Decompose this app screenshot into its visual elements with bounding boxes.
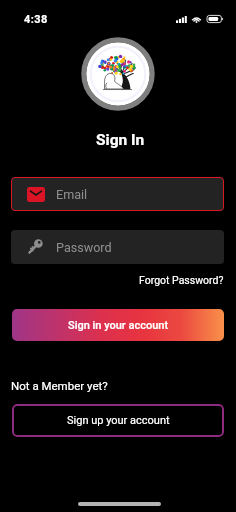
button[interactable]: Sign in your account xyxy=(12,309,224,341)
staticText: Not a Member yet? xyxy=(11,379,108,392)
staticText: 4:38 xyxy=(24,13,48,26)
staticText: Sign in your account xyxy=(68,319,169,332)
other: App logo xyxy=(81,37,155,111)
staticText: Forgot Password? xyxy=(139,274,224,286)
button[interactable]: Sign up your account xyxy=(12,404,224,437)
staticText: Password xyxy=(56,240,112,255)
staticText: Sign In xyxy=(96,131,145,149)
staticText: Sign up your account xyxy=(67,414,170,427)
button[interactable]: Forgot Password? xyxy=(127,272,236,288)
button[interactable]: Password xyxy=(11,230,224,264)
staticText: Email xyxy=(56,187,88,202)
button[interactable]: Email xyxy=(11,177,224,211)
